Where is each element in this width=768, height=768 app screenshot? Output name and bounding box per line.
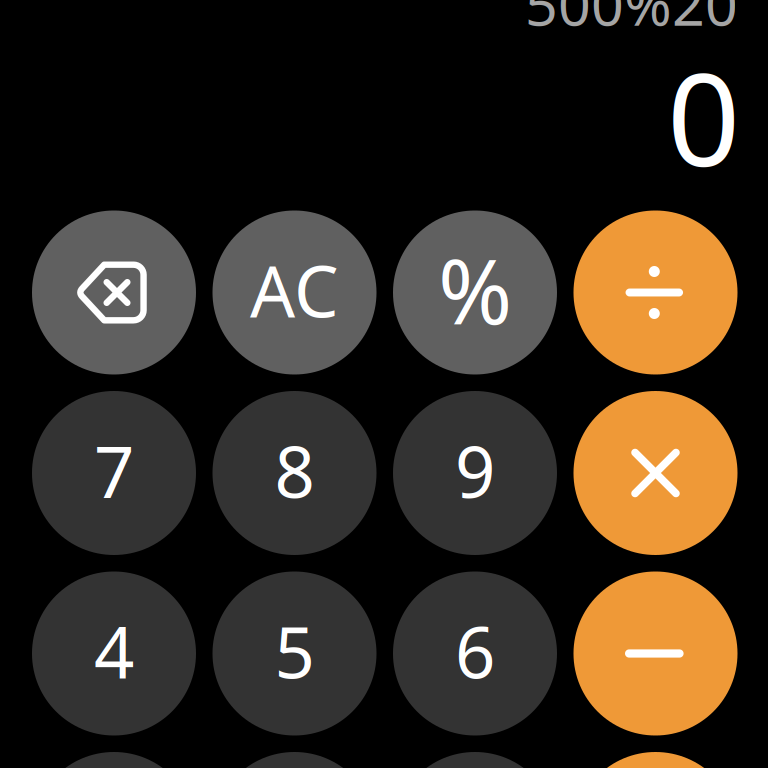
button[interactable]: 5 bbox=[212, 571, 376, 735]
button[interactable]: 7 bbox=[32, 391, 196, 555]
button[interactable]: 3 bbox=[393, 752, 557, 768]
staticText: 5 bbox=[274, 604, 314, 698]
staticText: 8 bbox=[274, 424, 314, 517]
button[interactable]: 1 bbox=[32, 752, 196, 768]
button[interactable]: AC bbox=[212, 210, 376, 374]
staticText: 6 bbox=[455, 604, 495, 698]
button[interactable]: 4 bbox=[32, 571, 196, 735]
button[interactable]: 8 bbox=[212, 391, 376, 555]
staticText: % bbox=[438, 230, 512, 349]
button[interactable]: 9 bbox=[393, 391, 557, 555]
staticText: 0 bbox=[667, 31, 740, 201]
button[interactable]: Add bbox=[573, 752, 737, 768]
button[interactable]: % bbox=[393, 210, 557, 374]
button[interactable]: Divide bbox=[573, 210, 737, 374]
button[interactable]: Subtract bbox=[573, 571, 737, 735]
staticText: 7 bbox=[94, 424, 134, 517]
button[interactable]: 6 bbox=[393, 571, 557, 735]
button[interactable]: Multiply bbox=[573, 391, 737, 555]
button[interactable]: 2 bbox=[212, 752, 376, 768]
staticText: 9 bbox=[455, 424, 495, 517]
staticText: AC bbox=[250, 243, 339, 337]
staticText: 4 bbox=[94, 604, 134, 698]
staticText: 500%20 bbox=[525, 0, 738, 41]
button[interactable]: Delete bbox=[32, 210, 196, 374]
